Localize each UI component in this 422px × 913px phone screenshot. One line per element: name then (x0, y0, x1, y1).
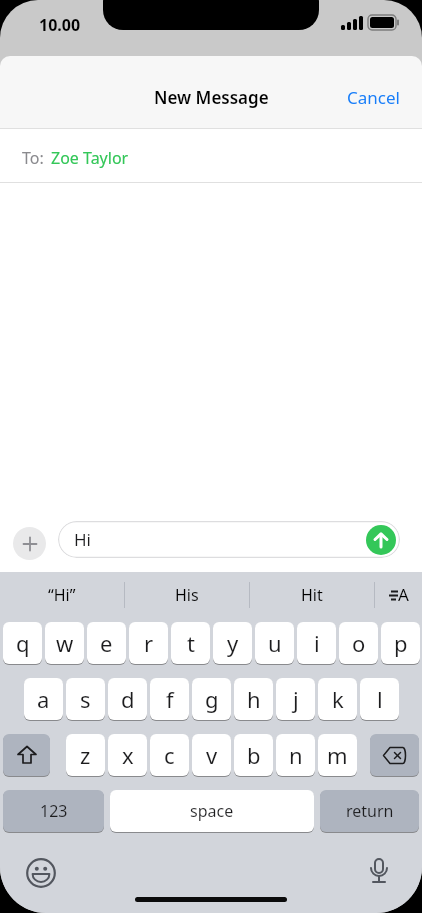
staticText: v (206, 740, 218, 770)
staticText: y (227, 628, 239, 658)
button[interactable] (26, 858, 56, 888)
button[interactable]: x (108, 734, 147, 777)
staticText: 10.00 (39, 14, 81, 36)
staticText: s (80, 684, 91, 714)
staticText: z (80, 740, 91, 770)
button[interactable]: v (192, 734, 231, 777)
staticText: w (56, 628, 74, 658)
button[interactable]: o (339, 622, 378, 665)
staticText: space (190, 800, 234, 822)
staticText: j (293, 684, 299, 714)
staticText: o (352, 628, 366, 658)
staticText: Hi (74, 528, 91, 551)
staticText: return (346, 800, 394, 822)
staticText: r (144, 628, 154, 658)
button[interactable]: d (108, 678, 147, 721)
button[interactable]: “Hi” (0, 572, 124, 617)
button[interactable] (3, 734, 50, 777)
staticText: c (164, 740, 175, 770)
staticText: n (289, 740, 303, 770)
button[interactable] (364, 858, 394, 888)
button[interactable]: s (66, 678, 105, 721)
staticText: q (16, 628, 30, 658)
staticText: e (100, 628, 113, 658)
button[interactable]: a (24, 678, 63, 721)
staticText: New Message (154, 86, 269, 109)
staticText: Zoe Taylor (51, 147, 129, 169)
button[interactable]: c (150, 734, 189, 777)
button[interactable]: 123 (3, 790, 104, 833)
staticText: To: (22, 147, 44, 169)
button[interactable]: Hi (58, 521, 400, 558)
button[interactable]: k (318, 678, 357, 721)
button[interactable]: j (276, 678, 315, 721)
staticText: Cancel (347, 86, 400, 109)
staticText: f (166, 684, 174, 714)
staticText: m (327, 740, 348, 770)
staticText: d (121, 684, 135, 714)
button[interactable]: l (360, 678, 399, 721)
button[interactable]: His (125, 572, 249, 617)
button[interactable] (370, 734, 419, 777)
button[interactable]: i (297, 622, 336, 665)
button[interactable]: p (381, 622, 420, 665)
staticText: a (37, 684, 50, 714)
staticText: t (187, 628, 195, 658)
staticText: i (314, 628, 320, 658)
button[interactable]: t (171, 622, 210, 665)
staticText: b (247, 740, 261, 770)
staticText: A (398, 583, 409, 606)
button[interactable]: w (45, 622, 84, 665)
button[interactable]: space (110, 790, 314, 833)
button[interactable]: Hit (250, 572, 374, 617)
button[interactable]: u (255, 622, 294, 665)
button[interactable]: e (87, 622, 126, 665)
button[interactable]: f (150, 678, 189, 721)
staticText: Hit (301, 584, 323, 606)
button[interactable]: z (66, 734, 105, 777)
button[interactable] (13, 527, 46, 560)
button[interactable]: m (318, 734, 357, 777)
button[interactable]: To: (0, 129, 422, 182)
staticText: p (394, 628, 408, 658)
staticText: x (122, 740, 134, 770)
button[interactable]: return (320, 790, 419, 833)
staticText: His (175, 584, 199, 606)
button[interactable]: b (234, 734, 273, 777)
button[interactable]: q (3, 622, 42, 665)
button[interactable]: g (192, 678, 231, 721)
staticText: k (332, 684, 344, 714)
staticText: 123 (40, 800, 68, 822)
button[interactable]: Cancel (347, 86, 400, 109)
staticText: l (377, 684, 383, 714)
button[interactable]: y (213, 622, 252, 665)
button[interactable]: h (234, 678, 273, 721)
button[interactable]: n (276, 734, 315, 777)
staticText: g (205, 684, 219, 714)
button[interactable]: A (375, 572, 422, 617)
button[interactable]: r (129, 622, 168, 665)
staticText: u (268, 628, 282, 658)
button[interactable] (366, 525, 396, 555)
staticText: h (247, 684, 261, 714)
staticText: “Hi” (48, 584, 76, 606)
